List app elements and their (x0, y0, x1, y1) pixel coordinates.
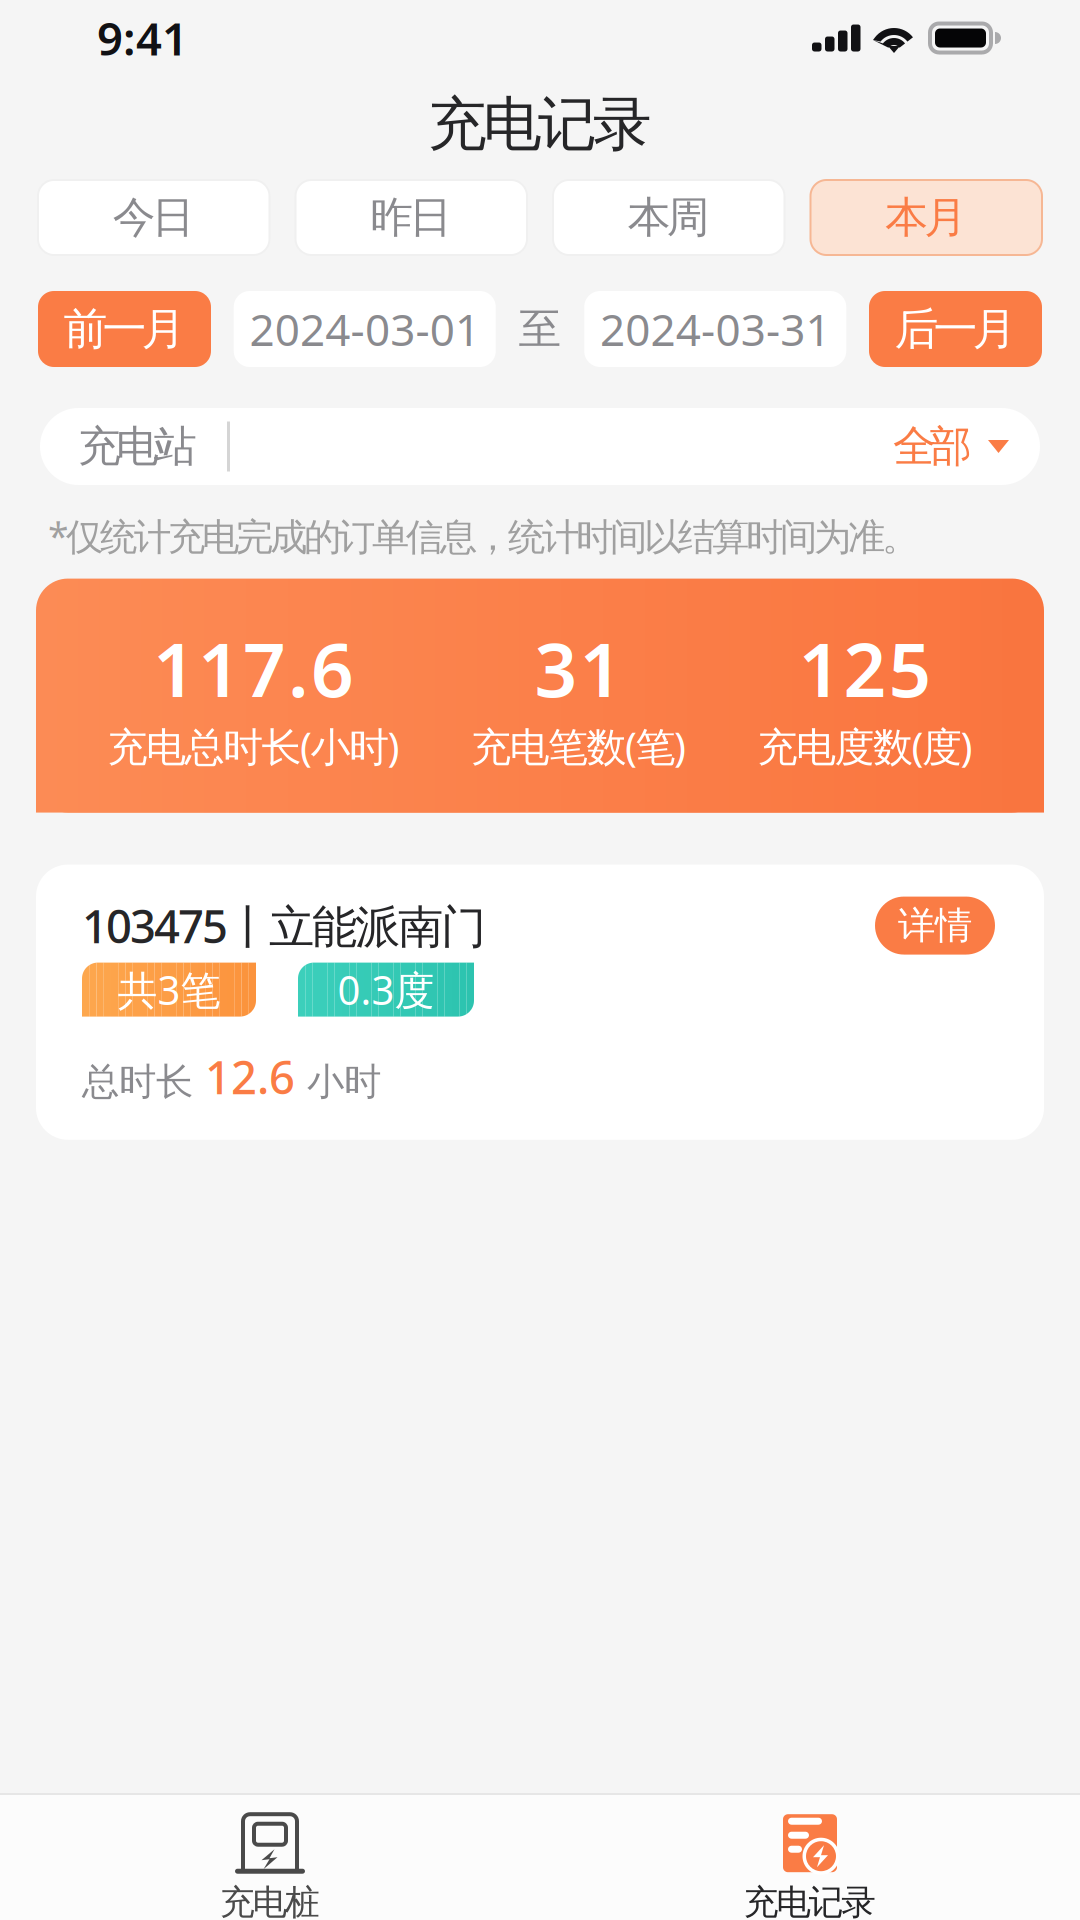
staticText: 详情 (898, 903, 972, 948)
button[interactable]: 今日 (38, 180, 269, 255)
staticText: 共3笔 (117, 963, 220, 1016)
staticText: 2024-03-31 (600, 300, 831, 358)
staticText: 今日 (113, 191, 195, 244)
staticText: 9:41 (97, 8, 188, 68)
staticText: 125 (798, 618, 931, 718)
staticText: 后一月 (894, 302, 1016, 356)
staticText: 昨日 (370, 191, 452, 244)
staticText: 充电度数(度) (757, 720, 972, 773)
staticText: 充电桩 (220, 1881, 320, 1920)
staticText: 总时长 (82, 1059, 193, 1105)
staticText: 前一月 (63, 302, 185, 356)
button[interactable]: 详情 (875, 897, 995, 955)
staticText: 31 (534, 618, 622, 718)
staticText: 0.3度 (337, 963, 434, 1016)
staticText: 小时 (307, 1059, 381, 1105)
staticText: 本周 (628, 191, 710, 244)
staticText: 103475丨立能派南门 (82, 895, 486, 956)
staticText: 本月 (885, 191, 967, 244)
button[interactable]: 后一月 (869, 291, 1042, 367)
staticText: 117.6 (153, 618, 354, 718)
button[interactable]: 2024-03-31 (584, 291, 846, 367)
staticText: 全部 (893, 420, 972, 473)
staticText: 12.6 (205, 1047, 295, 1107)
button[interactable]: 前一月 (38, 291, 211, 367)
staticText: 充电记录 (744, 1881, 876, 1920)
staticText: 充电记录 (428, 88, 652, 161)
button[interactable]: 昨日 (295, 180, 527, 255)
button[interactable]: 本周 (553, 180, 784, 255)
staticText: 至 (518, 303, 561, 355)
button[interactable]: 充电记录 (540, 1812, 1080, 1920)
button[interactable]: 本月 (810, 180, 1042, 255)
staticText: 充电总时长(小时) (107, 720, 399, 773)
staticText: 充电笔数(笔) (471, 720, 686, 773)
button[interactable]: 2024-03-01 (234, 291, 496, 367)
staticText: 充电站 (78, 420, 197, 473)
button[interactable]: 充电桩 (0, 1812, 540, 1920)
staticText: *仅统计充电完成的订单信息，统计时间以结算时间为准。 (48, 511, 919, 561)
button[interactable]: 全部 (893, 420, 1040, 473)
staticText: 2024-03-01 (249, 300, 480, 358)
